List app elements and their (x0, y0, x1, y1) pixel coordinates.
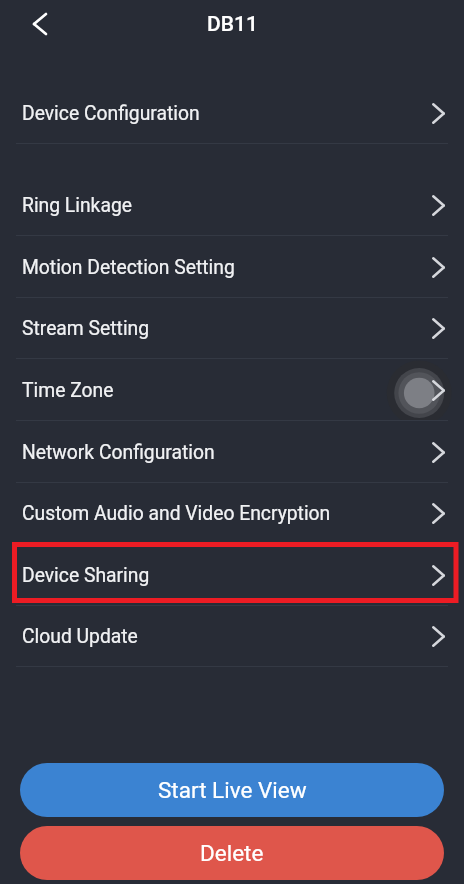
button[interactable]: Time Zone (0, 359, 464, 421)
staticText: Stream Setting (22, 317, 150, 340)
staticText: Custom Audio and Video Encryption (22, 502, 331, 525)
staticText: DB11 (207, 12, 258, 37)
button[interactable]: Device Sharing (0, 544, 464, 606)
staticText: Ring Linkage (22, 194, 132, 217)
staticText: Cloud Update (22, 625, 138, 648)
button[interactable]: Network Configuration (0, 421, 464, 483)
staticText: Motion Detection Setting (22, 256, 235, 279)
button[interactable]: Start Live View (20, 763, 444, 817)
button[interactable]: Motion Detection Setting (0, 236, 464, 298)
button[interactable]: Delete (20, 826, 444, 880)
button[interactable]: Custom Audio and Video Encryption (0, 483, 464, 544)
staticText: Time Zone (22, 379, 114, 402)
staticText: Device Configuration (22, 102, 200, 125)
staticText: Delete (200, 840, 264, 866)
button[interactable]: Back (22, 6, 58, 42)
button[interactable]: Device Configuration (0, 83, 464, 144)
staticText: Start Live View (158, 777, 307, 803)
button[interactable]: Cloud Update (0, 606, 464, 667)
button[interactable]: Stream Setting (0, 298, 464, 359)
button[interactable]: Ring Linkage (0, 175, 464, 236)
staticText: Network Configuration (22, 441, 215, 464)
staticText: Device Sharing (22, 564, 150, 587)
